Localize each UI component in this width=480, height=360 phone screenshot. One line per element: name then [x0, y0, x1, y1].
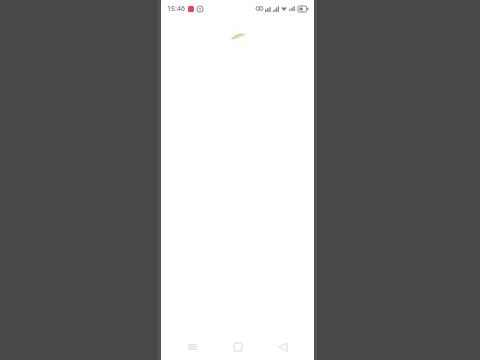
- button[interactable]: Recent apps: [177, 334, 207, 360]
- button[interactable]: Back: [268, 334, 298, 360]
- staticText: 15:46: [167, 4, 185, 14]
- button[interactable]: Home: [223, 334, 253, 360]
